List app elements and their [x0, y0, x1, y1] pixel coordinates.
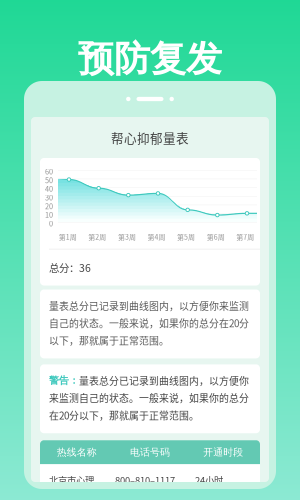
staticText: 电话号码 — [130, 446, 170, 458]
staticText: 第4周 — [147, 232, 165, 242]
staticText: 开通时段 — [203, 446, 243, 458]
staticText: 警告：量表总分已记录到曲线图内，以方便你来监测自己的状态。一般来说，如果你的总分… — [49, 373, 249, 422]
staticText: 30 — [45, 192, 53, 203]
staticText: 第3周 — [118, 232, 136, 242]
staticText: 10 — [45, 209, 53, 220]
staticText: 60 — [45, 166, 53, 177]
staticText: 预防复发 — [78, 36, 222, 82]
staticText: 0 — [49, 218, 53, 229]
staticText: 24小时 — [195, 473, 223, 487]
staticText: 量表总分已记录到曲线图内，以方便你来监测自己的状态。一般来说，如果你的总分在20… — [49, 298, 249, 347]
staticText: 第5周 — [177, 232, 195, 242]
staticText: 800–810–1117 — [115, 473, 175, 487]
staticText: 第2周 — [88, 232, 106, 242]
staticText: 50 — [45, 175, 53, 185]
staticText: 第7周 — [236, 232, 254, 242]
staticText: 帮心抑郁量表 — [111, 128, 189, 146]
staticText: 第6周 — [207, 232, 225, 242]
staticText: 40 — [45, 183, 53, 194]
staticText: 第1周 — [59, 232, 77, 242]
staticText: 总分：36 — [49, 260, 91, 275]
staticText: 20 — [45, 201, 53, 211]
staticText: 热线名称 — [57, 446, 97, 458]
staticText: 北京市心理 — [49, 473, 94, 487]
